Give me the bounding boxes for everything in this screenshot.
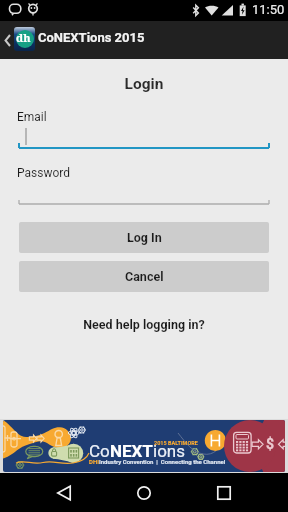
button[interactable]: Cancel [19,261,269,292]
staticText: CoNEXTions 2015 [38,30,145,45]
staticText: NEXT [110,441,153,461]
staticText: Co [89,441,110,461]
staticText: ions [153,441,185,461]
staticText: 11:50 [252,2,285,17]
staticText: dhi [16,30,34,48]
staticText: 2015 BALTIMORE [154,440,198,446]
button[interactable]: Home [120,473,168,512]
button[interactable] [0,177,288,207]
staticText: DHI [89,458,99,465]
button[interactable]: Recent apps [200,473,248,512]
staticText: Cancel [125,269,164,284]
button[interactable]: Log In [19,222,269,253]
button[interactable] [0,119,288,153]
button[interactable]: Navigate up [0,27,14,53]
button[interactable]: $ [0,419,288,473]
staticText: Login [0,75,288,93]
staticText: Industry Convention | Connecting the Cha… [99,458,226,465]
button[interactable]: Back [40,473,88,512]
staticText: Email [17,110,47,124]
staticText: $ [266,436,275,452]
staticText: Log In [127,230,162,245]
staticText: Password [17,166,71,180]
button[interactable]: Need help logging in? [0,317,288,332]
